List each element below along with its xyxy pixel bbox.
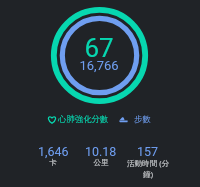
staticText: 步數: [134, 114, 151, 125]
staticText: 16,766: [69, 58, 129, 73]
button[interactable]: 10.18: [77, 144, 125, 169]
staticText: 活動時間 (分鐘): [124, 158, 172, 179]
staticText: 157: [137, 144, 159, 159]
other: Steps: [119, 115, 128, 124]
staticText: 10.18: [85, 144, 117, 159]
button[interactable]: Heart points: [47, 114, 109, 125]
other: Heart points: [47, 115, 57, 125]
button[interactable]: 157: [124, 144, 172, 180]
button[interactable]: 1,646: [29, 144, 77, 169]
staticText: 67: [69, 33, 129, 63]
staticText: 心肺強化分數: [58, 114, 109, 125]
button[interactable]: Steps: [119, 114, 151, 125]
staticText: 公里: [93, 158, 109, 168]
staticText: 1,646: [38, 144, 69, 159]
button[interactable]: Fitness rings: [50, 6, 149, 105]
staticText: 卡: [49, 158, 57, 168]
